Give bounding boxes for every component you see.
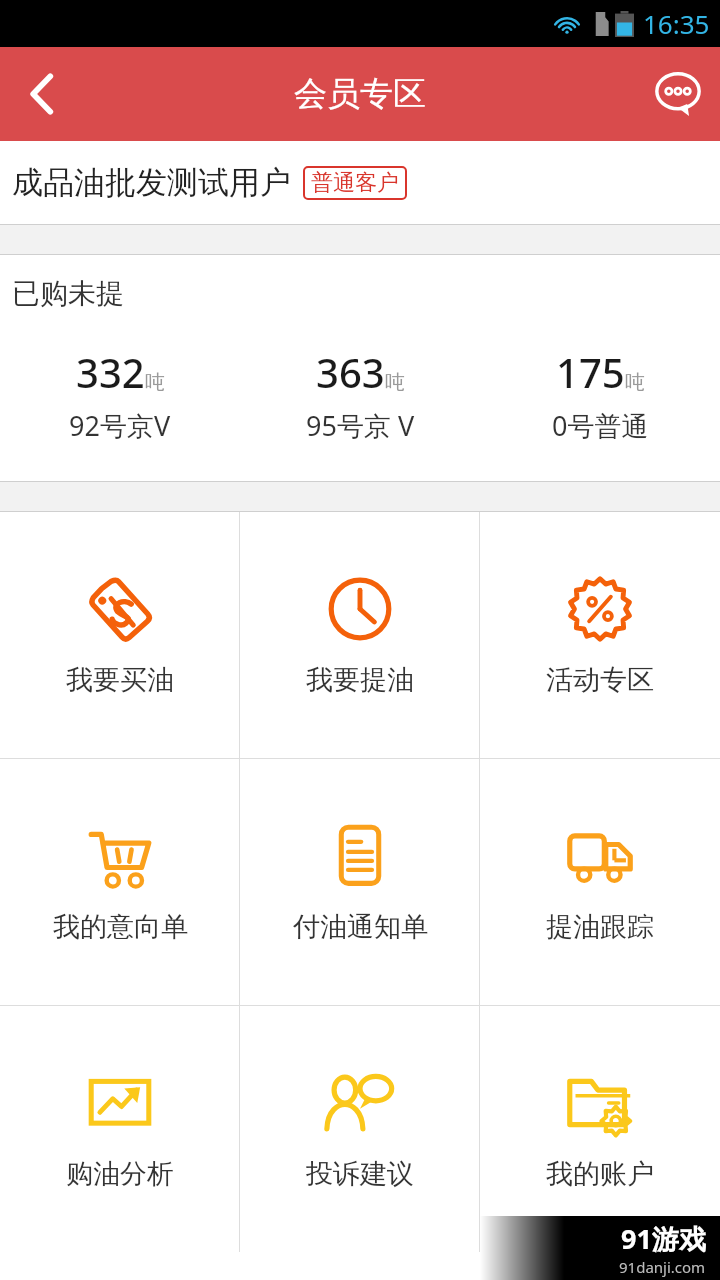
staticText: 我要买油 [66,663,174,697]
staticText: 付油通知单 [293,910,428,944]
staticText: 我要提油 [306,663,414,697]
staticText: 吨 [385,370,405,395]
staticText: 我的账户 [546,1157,654,1191]
button[interactable]: 付油通知单 [240,759,480,1005]
staticText: 购油分析 [66,1157,174,1191]
button[interactable]: 363 [240,331,480,444]
button[interactable]: 活动专区 [480,512,720,758]
button[interactable]: 332 [0,331,240,444]
staticText: 16:35 [643,6,710,41]
staticText: 91游戏 [621,1220,706,1257]
staticText: 吨 [625,370,645,395]
button[interactable]: Back [0,47,84,141]
staticText: 363 [316,345,385,399]
staticText: 活动专区 [546,663,654,697]
staticText: 会员专区 [294,73,426,115]
staticText: 92号京V [69,407,171,444]
button[interactable]: 我的意向单 [0,759,240,1005]
staticText: 普通客户 [311,169,399,197]
staticText: 332 [76,345,145,399]
button[interactable]: 175 [480,331,720,444]
staticText: 我的意向单 [53,910,188,944]
staticText: 成品油批发测试用户 [12,163,291,202]
button[interactable]: 提油跟踪 [480,759,720,1005]
button[interactable]: 购油分析 [0,1006,240,1252]
button[interactable]: 我要提油 [240,512,480,758]
staticText: 175 [556,345,625,399]
button[interactable]: 我的账户 [480,1006,720,1252]
staticText: 已购未提 [12,276,124,311]
button[interactable]: Messages [636,47,720,141]
button[interactable]: 投诉建议 [240,1006,480,1252]
staticText: 吨 [145,370,165,395]
staticText: 91danji.com [619,1257,706,1277]
staticText: 95号京 V [306,407,415,444]
staticText: 0号普通 [552,407,649,444]
staticText: 提油跟踪 [546,910,654,944]
button[interactable]: 我要买油 [0,512,240,758]
staticText: 投诉建议 [306,1157,414,1191]
